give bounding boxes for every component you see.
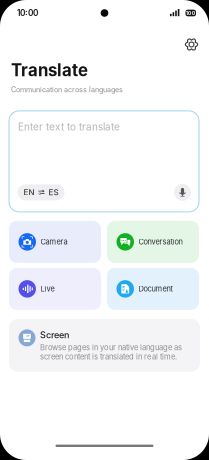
- button[interactable]: Live: [9, 268, 101, 310]
- staticText: Browse pages in your native language as …: [40, 343, 182, 361]
- button[interactable]: Settings: [185, 38, 198, 51]
- staticText: 100: [186, 10, 196, 16]
- button[interactable]: Camera: [9, 221, 101, 263]
- staticText: Document: [138, 284, 172, 293]
- staticText: Live: [40, 284, 54, 293]
- button[interactable]: EN: [17, 184, 64, 200]
- button[interactable]: Document: [107, 268, 199, 310]
- staticText: Translate: [11, 60, 88, 80]
- staticText: EN: [23, 187, 34, 197]
- button[interactable]: Screen: [9, 319, 200, 372]
- staticText: Communication across languages: [11, 85, 123, 94]
- button[interactable]: Voice input: [174, 184, 191, 201]
- staticText: Camera: [40, 237, 67, 246]
- staticText: Screen: [40, 329, 69, 340]
- staticText: ES: [48, 187, 58, 197]
- staticText: Conversation: [138, 237, 182, 246]
- button[interactable]: Conversation: [107, 221, 199, 263]
- staticText: Enter text to translate: [18, 121, 120, 133]
- staticText: 10:00: [17, 8, 38, 18]
